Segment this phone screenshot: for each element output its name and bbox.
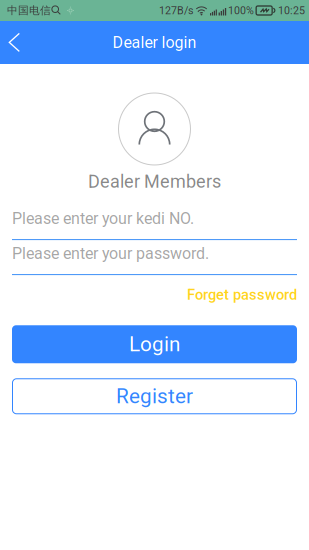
staticText: Register: [116, 384, 193, 408]
staticText: Forget password: [187, 286, 297, 303]
button[interactable]: Register: [12, 378, 297, 414]
button[interactable]: Login: [12, 325, 297, 363]
staticText: Dealer login: [112, 33, 196, 52]
staticText: Login: [129, 332, 180, 356]
staticText: 100%: [228, 4, 254, 17]
staticText: 10:25: [278, 4, 305, 17]
staticText: Please enter your password.: [12, 244, 209, 263]
staticText: Dealer Members: [88, 171, 221, 192]
button[interactable]: Forget password: [187, 283, 297, 306]
button[interactable]: Back: [0, 21, 32, 64]
staticText: Please enter your kedi NO.: [12, 209, 194, 228]
staticText: 127B/s: [159, 4, 194, 17]
staticText: 中国电信: [7, 4, 51, 17]
